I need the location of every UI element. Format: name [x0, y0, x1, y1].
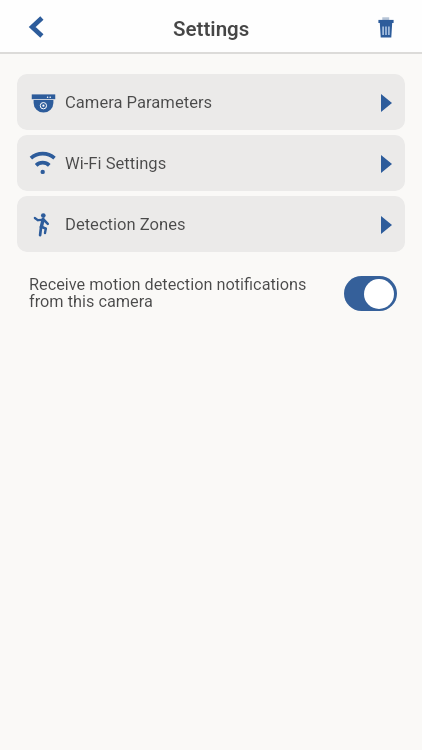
staticText: Camera Parameters: [65, 93, 213, 112]
staticText: Settings: [173, 17, 250, 41]
staticText: Detection Zones: [65, 215, 186, 234]
staticText: Wi-Fi Settings: [65, 154, 167, 173]
staticText: Receive motion detection notifications f…: [29, 275, 311, 311]
button[interactable]: Wi-Fi Settings: [17, 135, 405, 191]
button[interactable]: Detection Zones: [17, 196, 405, 252]
button[interactable]: Back: [16, 6, 58, 48]
button[interactable]: Delete: [365, 6, 407, 48]
button[interactable]: Receive motion detection notifications f…: [29, 269, 397, 317]
button[interactable]: Camera Parameters: [17, 74, 405, 130]
